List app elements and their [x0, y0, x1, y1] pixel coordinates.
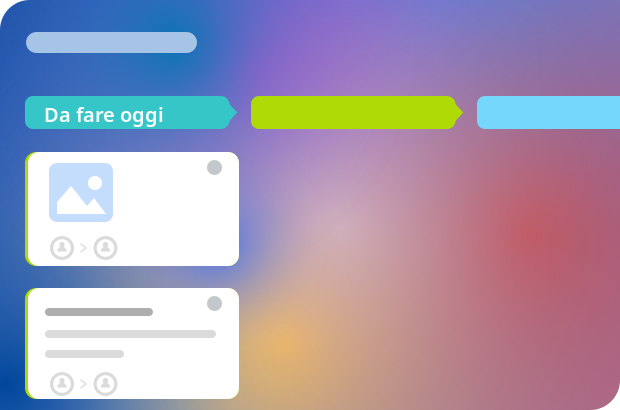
button[interactable] — [25, 152, 239, 266]
button[interactable]: Da fare oggi — [25, 96, 237, 129]
button[interactable]: Filtro azzurro — [477, 96, 620, 129]
staticText: Da fare oggi — [44, 101, 164, 128]
button[interactable] — [25, 288, 239, 399]
button[interactable]: Filtro verde — [251, 96, 463, 129]
